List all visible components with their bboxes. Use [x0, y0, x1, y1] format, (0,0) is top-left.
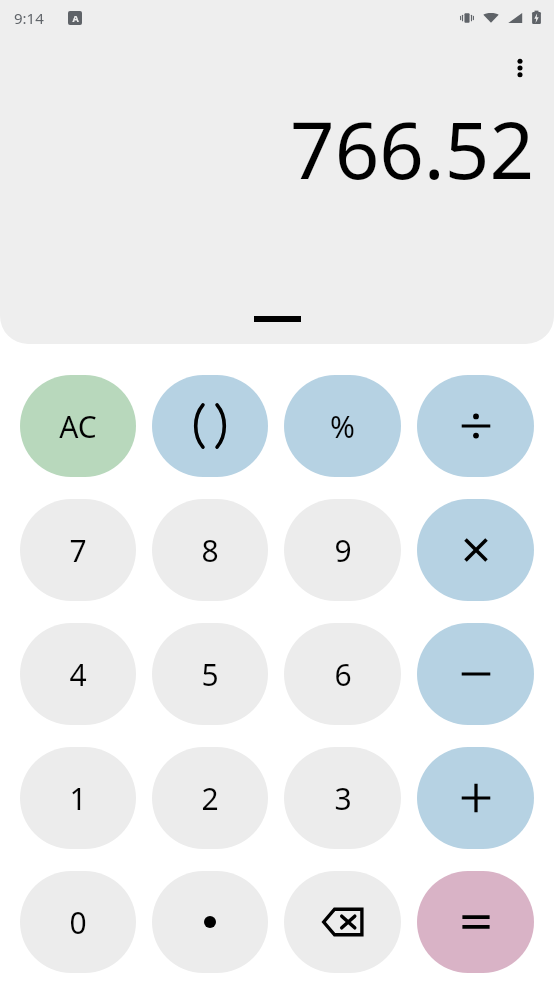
- staticText: 3: [334, 778, 352, 819]
- button[interactable]: [152, 375, 268, 477]
- button[interactable]: [417, 747, 534, 849]
- button[interactable]: 0: [20, 871, 136, 973]
- button[interactable]: 5: [152, 623, 268, 725]
- button[interactable]: 6: [284, 623, 401, 725]
- staticText: 9:14: [14, 8, 44, 28]
- button[interactable]: Backspace: [284, 871, 401, 973]
- button[interactable]: [417, 623, 534, 725]
- staticText: 5: [201, 654, 219, 695]
- button[interactable]: 8: [152, 499, 268, 601]
- staticText: 0: [69, 902, 87, 943]
- button[interactable]: [417, 499, 534, 601]
- button[interactable]: 7: [20, 499, 136, 601]
- staticText: 2: [201, 778, 219, 819]
- button[interactable]: AC: [20, 375, 136, 477]
- staticText: 6: [334, 654, 352, 695]
- staticText: 8: [201, 530, 219, 571]
- staticText: AC: [59, 406, 97, 447]
- button[interactable]: 3: [284, 747, 401, 849]
- button[interactable]: 9: [284, 499, 401, 601]
- button[interactable]: [417, 375, 534, 477]
- button[interactable]: %: [284, 375, 401, 477]
- staticText: 9: [334, 530, 352, 571]
- button[interactable]: [152, 871, 268, 973]
- staticText: %: [330, 406, 355, 447]
- staticText: 1: [69, 778, 87, 819]
- button[interactable]: 4: [20, 623, 136, 725]
- button[interactable]: [417, 871, 534, 973]
- staticText: 7: [69, 530, 87, 571]
- button[interactable]: 2: [152, 747, 268, 849]
- button[interactable]: 1: [20, 747, 136, 849]
- staticText: 766.52: [290, 96, 534, 202]
- staticText: A: [72, 12, 79, 24]
- button[interactable]: More options: [496, 44, 544, 92]
- staticText: 4: [69, 654, 87, 695]
